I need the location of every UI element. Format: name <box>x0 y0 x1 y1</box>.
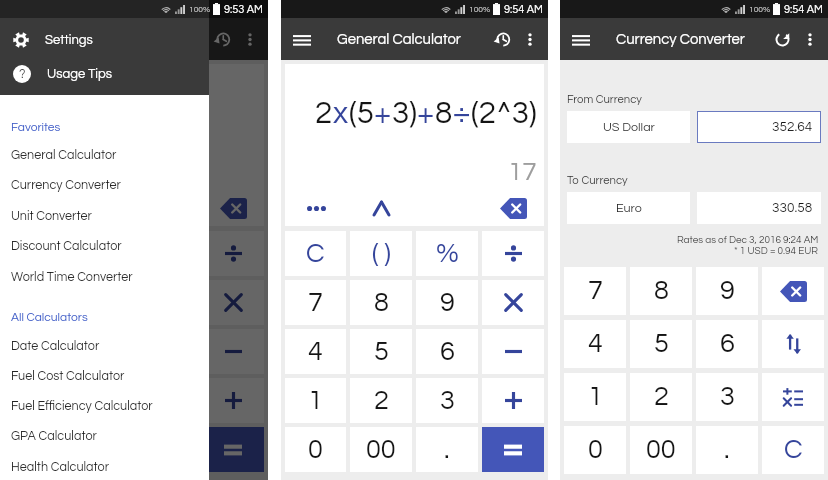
staticText: 5 <box>94 338 109 366</box>
button[interactable]: More functions <box>285 191 347 225</box>
button[interactable]: Power <box>66 191 134 225</box>
staticText: General Calculator <box>11 149 117 162</box>
button[interactable]: World Time Converter <box>0 262 209 292</box>
button[interactable]: All Calculators <box>0 302 209 332</box>
button[interactable]: Backspace <box>500 191 527 225</box>
button[interactable]: 3 <box>136 378 198 423</box>
button[interactable]: 4 <box>564 320 626 368</box>
button[interactable]: ? <box>0 59 209 88</box>
button[interactable]: 8 <box>70 280 132 325</box>
button[interactable]: Discount Calculator <box>0 231 209 261</box>
button[interactable]: 00 <box>350 427 412 472</box>
staticText: 1 <box>28 387 43 415</box>
button[interactable]: More functions <box>4 191 66 225</box>
button[interactable]: ( ) <box>70 231 132 276</box>
button[interactable]: Add <box>202 378 264 423</box>
button[interactable]: Backspace <box>220 191 247 225</box>
button[interactable]: C <box>762 426 824 474</box>
button[interactable]: 352.64 <box>697 111 821 143</box>
button[interactable]: More options <box>799 24 821 54</box>
button[interactable]: 9 <box>416 280 478 325</box>
staticText: + <box>417 97 435 129</box>
button[interactable]: 5 <box>70 329 132 374</box>
button[interactable]: Swap currencies <box>762 320 824 368</box>
staticText: 0 <box>308 436 323 464</box>
button[interactable]: % <box>416 231 478 276</box>
button[interactable]: US Dollar <box>567 111 690 143</box>
button[interactable]: 5 <box>630 320 692 368</box>
button[interactable]: 4 <box>285 329 346 374</box>
button[interactable]: Power <box>347 191 415 225</box>
button[interactable]: General Calculator <box>0 140 209 170</box>
button[interactable]: Euro <box>567 192 690 224</box>
button[interactable]: 7 <box>285 280 346 325</box>
staticText: 17 <box>508 159 537 186</box>
button[interactable]: 8 <box>350 280 412 325</box>
staticText: Discount Calculator <box>11 240 122 253</box>
button[interactable]: 2 <box>70 378 132 423</box>
button[interactable]: History <box>487 24 517 54</box>
button[interactable]: C <box>4 231 66 276</box>
button[interactable]: ( ) <box>350 231 412 276</box>
button[interactable]: C <box>285 231 346 276</box>
button[interactable]: Settings <box>0 25 209 54</box>
button[interactable]: 7 <box>4 280 66 325</box>
button[interactable]: Multiply <box>202 280 264 325</box>
staticText: 2 <box>374 387 389 415</box>
button[interactable]: Refresh rates <box>767 24 797 54</box>
button[interactable]: GPA Calculator <box>0 421 209 451</box>
button[interactable]: 0 <box>564 426 626 474</box>
button[interactable]: History <box>207 24 237 54</box>
button[interactable]: 00 <box>630 426 692 474</box>
button[interactable]: Health Calculator <box>0 452 209 480</box>
button[interactable]: 0 <box>285 427 346 472</box>
button[interactable]: 3 <box>696 373 758 421</box>
button[interactable]: 6 <box>696 320 758 368</box>
button[interactable]: . <box>696 426 758 474</box>
button[interactable]: 5 <box>350 329 412 374</box>
button[interactable]: 2 <box>350 378 412 423</box>
button[interactable]: Favorites <box>0 112 209 142</box>
button[interactable]: Multiply <box>482 280 544 325</box>
button[interactable]: 330.58 <box>697 192 821 224</box>
button[interactable]: Date Calculator <box>0 331 209 361</box>
button[interactable]: Unit Converter <box>0 201 209 231</box>
button[interactable]: Fuel Cost Calculator <box>0 361 209 391</box>
button[interactable]: Equals <box>482 427 544 472</box>
button[interactable]: 7 <box>564 267 626 315</box>
button[interactable]: 1 <box>285 378 346 423</box>
button[interactable]: Currency Converter <box>0 170 209 200</box>
button[interactable]: Divide <box>202 231 264 276</box>
button[interactable]: 6 <box>416 329 478 374</box>
button[interactable]: 4 <box>4 329 66 374</box>
button[interactable]: Open navigation drawer <box>281 18 323 60</box>
button[interactable]: Open navigation drawer <box>560 18 602 60</box>
button[interactable]: 00 <box>70 427 132 472</box>
button[interactable]: More options <box>239 24 261 54</box>
button[interactable]: Add <box>482 378 544 423</box>
button[interactable]: Subtract <box>482 329 544 374</box>
button[interactable]: Subtract <box>202 329 264 374</box>
button[interactable]: Open navigation drawer <box>0 18 42 60</box>
button[interactable]: 1 <box>564 373 626 421</box>
button[interactable]: Divide <box>482 231 544 276</box>
button[interactable]: 2 <box>630 373 692 421</box>
button[interactable]: 0 <box>4 427 66 472</box>
button[interactable]: 3 <box>416 378 478 423</box>
staticText: . <box>444 436 450 464</box>
button[interactable]: 9 <box>696 267 758 315</box>
staticText: 100% <box>189 5 211 14</box>
button[interactable]: Backspace <box>762 267 824 315</box>
button[interactable]: 8 <box>630 267 692 315</box>
button[interactable]: . <box>416 427 478 472</box>
button[interactable]: More options <box>519 24 541 54</box>
button[interactable]: Fuel Efficiency Calculator <box>0 391 209 421</box>
button[interactable]: Operators <box>762 373 824 421</box>
button[interactable]: 1 <box>4 378 66 423</box>
button[interactable]: Equals <box>202 427 264 472</box>
